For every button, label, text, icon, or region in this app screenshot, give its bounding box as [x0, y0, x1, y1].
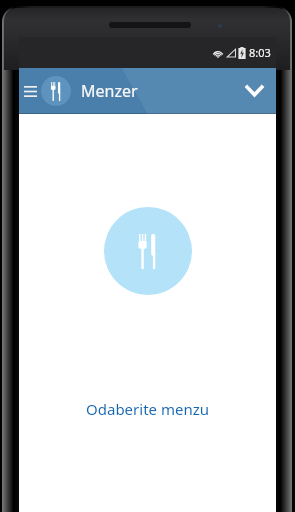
button[interactable]: Expand: [232, 68, 276, 114]
staticText: Menzer: [81, 80, 138, 102]
staticText: 8:03: [249, 45, 271, 60]
staticText: Odaberite menzu: [86, 399, 209, 419]
button[interactable]: Odaberite menzu: [74, 396, 221, 422]
button[interactable]: Open navigation drawer: [19, 70, 41, 112]
button[interactable]: Select a canteen: [104, 207, 192, 295]
